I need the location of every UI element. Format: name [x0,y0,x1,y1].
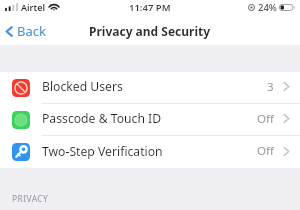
staticText: 3 [267,79,274,95]
button[interactable]: Passcode & Touch ID [0,104,300,135]
staticText: PRIVACY [12,193,49,205]
staticText: 11:47 PM [129,1,171,14]
staticText: Off [257,111,274,127]
staticText: Back [17,22,46,40]
staticText: Privacy and Security [89,23,211,39]
button[interactable]: Two-Step Verification [0,136,300,168]
staticText: 24% [258,1,277,14]
staticText: Passcode & Touch ID [42,110,162,127]
button[interactable]: Blocked Users [0,72,300,103]
button[interactable]: Back [0,20,52,42]
staticText: Blocked Users [42,78,123,95]
staticText: Off [257,143,274,159]
staticText: Two-Step Verification [42,143,163,160]
staticText: Airtel [21,1,45,13]
